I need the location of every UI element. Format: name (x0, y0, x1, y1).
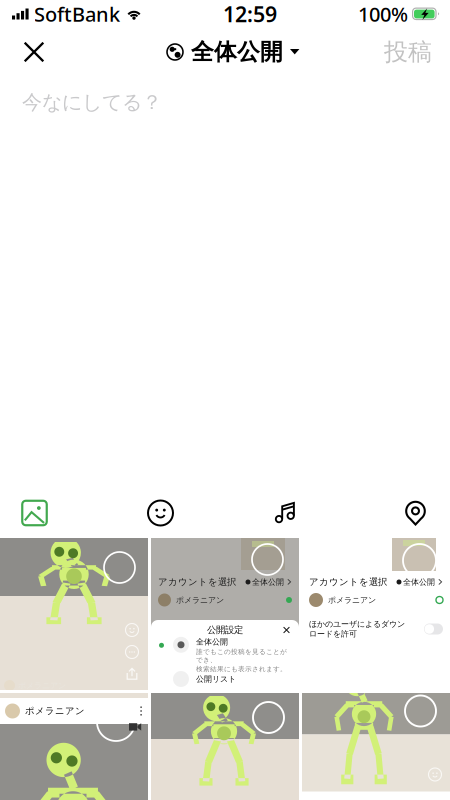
button[interactable]: Close (10, 28, 58, 76)
staticText: ほかのユーザによるダウンロードを許可 (309, 619, 405, 639)
staticText: 検索結果にも表示されます。 (196, 665, 287, 673)
staticText: SoftBank (34, 1, 120, 27)
staticText: 全体公開 (191, 38, 283, 66)
staticText: 投稿 (384, 37, 432, 67)
staticText: ポメラニアン (176, 595, 224, 605)
staticText: 100% (358, 1, 408, 27)
staticText: 全体公開 (252, 577, 284, 587)
staticText: 12:59 (223, 0, 277, 28)
button[interactable]: 投稿 (368, 28, 432, 76)
button[interactable]: Emoji (126, 488, 195, 538)
button[interactable]: Music (252, 488, 321, 538)
staticText: 全体公開 (403, 577, 435, 587)
button[interactable]: Location (381, 488, 450, 538)
staticText: アカウントを選択 (158, 576, 236, 588)
staticText: 今なにしてる？ (22, 90, 162, 115)
staticText: アカウントを選択 (309, 576, 387, 588)
button[interactable]: Photo (0, 488, 69, 538)
button[interactable]: 全体公開 (150, 28, 300, 76)
staticText: ポメラニアン (25, 705, 85, 717)
staticText: 全体公開 (196, 637, 228, 647)
staticText: 公開設定 (207, 624, 243, 636)
staticText: ポメラニアン (328, 595, 376, 605)
staticText: 誰でもこの投稿を見ることができ、 (196, 648, 287, 664)
staticText: 公開リスト (196, 674, 236, 684)
